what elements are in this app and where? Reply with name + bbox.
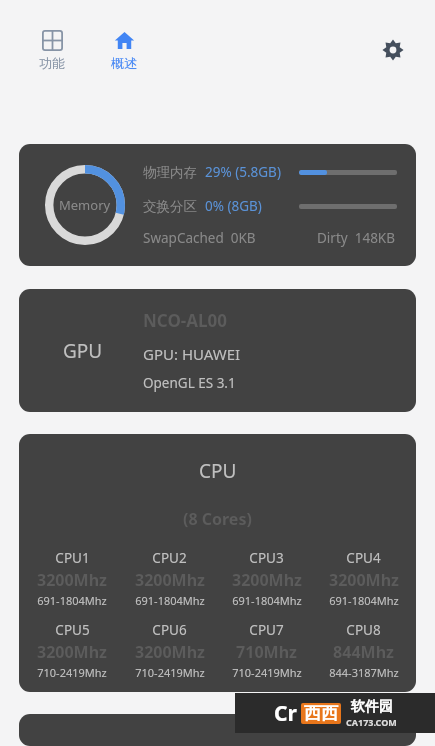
staticText: Memory [59, 196, 111, 214]
staticText: 691-1804Mhz [329, 593, 399, 608]
staticText: 691-1804Mhz [232, 593, 302, 608]
button[interactable]: CPU3 [218, 549, 315, 608]
button[interactable] [19, 714, 416, 746]
staticText: NCO-AL00 [143, 309, 227, 332]
staticText: 691-1804Mhz [37, 593, 107, 608]
staticText: 西西 [304, 703, 338, 724]
staticText: CPU5 [55, 621, 90, 639]
staticText: CPU8 [346, 621, 381, 639]
button[interactable]: CPU7 [218, 621, 315, 680]
staticText: 功能 [39, 55, 65, 71]
staticText: 交换分区 [143, 198, 197, 215]
staticText: 3200Mhz [37, 641, 107, 663]
staticText: CPU1 [55, 549, 90, 567]
staticText: 3200Mhz [135, 569, 205, 591]
button[interactable]: CPU5 [23, 621, 121, 680]
button[interactable]: CPU2 [121, 549, 218, 608]
staticText: SwapCached 0KB [143, 229, 256, 247]
button[interactable]: Settings [375, 32, 411, 68]
button[interactable]: CPU8 [315, 621, 412, 680]
button[interactable]: Memory [19, 144, 416, 266]
staticText: CPU7 [249, 621, 284, 639]
staticText: CA173.COM [346, 716, 397, 728]
staticText: CPU3 [249, 549, 284, 567]
staticText: 710-2419Mhz [135, 665, 205, 680]
staticText: 概述 [111, 55, 137, 71]
staticText: 0% (8GB) [205, 197, 299, 215]
staticText: 710-2419Mhz [232, 665, 302, 680]
staticText: CPU6 [152, 621, 187, 639]
staticText: (8 Cores) [183, 508, 252, 530]
staticText: 3200Mhz [37, 569, 107, 591]
staticText: 844-3187Mhz [329, 665, 399, 680]
staticText: GPU: HUAWEI [143, 344, 241, 364]
button[interactable]: CPU1 [23, 549, 121, 608]
staticText: 3200Mhz [135, 641, 205, 663]
staticText: 3200Mhz [232, 569, 302, 591]
staticText: 3200Mhz [329, 569, 399, 591]
button[interactable]: CPU [19, 434, 416, 692]
staticText: 物理内存 [143, 164, 197, 181]
staticText: 710-2419Mhz [37, 665, 107, 680]
button[interactable]: CPU4 [315, 549, 412, 608]
button[interactable]: 概述 [98, 28, 150, 73]
staticText: 710Mhz [236, 641, 297, 663]
button[interactable]: CPU6 [121, 621, 218, 680]
staticText: CPU4 [346, 549, 381, 567]
staticText: OpenGL ES 3.1 [143, 374, 236, 392]
staticText: 29% (5.8GB) [205, 163, 299, 181]
staticText: Dirty 148KB [317, 229, 395, 247]
staticText: CPU [199, 458, 237, 484]
staticText: 844Mhz [333, 641, 394, 663]
button[interactable]: 功能 [26, 28, 78, 73]
button[interactable]: GPU [19, 289, 416, 412]
staticText: Cr [274, 699, 297, 728]
staticText: 软件园 [351, 698, 393, 716]
staticText: GPU [63, 338, 103, 364]
staticText: CPU2 [152, 549, 187, 567]
staticText: 691-1804Mhz [135, 593, 205, 608]
